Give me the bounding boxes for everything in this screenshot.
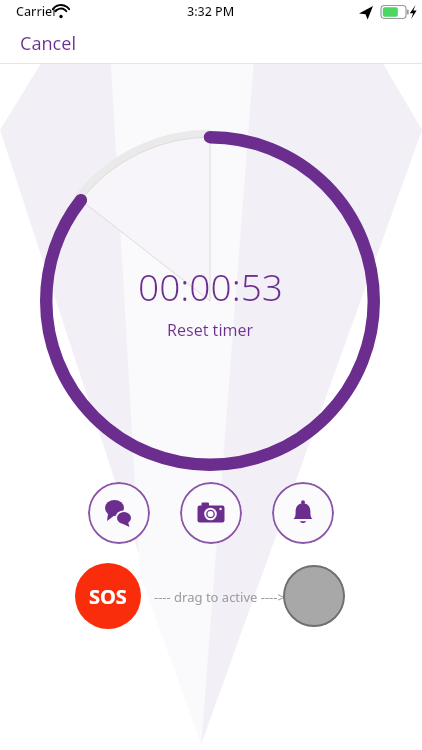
button[interactable]: Camera [180,482,242,544]
button[interactable]: Messages [88,482,150,544]
button[interactable]: SOS [75,563,141,629]
button[interactable]: Drag handle [283,565,345,627]
staticText: Carrier [16,3,58,20]
button[interactable]: Cancel [14,26,100,60]
staticText: 3:32 PM [187,3,235,20]
staticText: SOS [89,583,127,610]
staticText: 00:00:53 [138,261,283,311]
staticText: Cancel [20,31,77,56]
button[interactable]: 00:00:53 [40,131,380,471]
staticText: Reset timer [167,319,254,341]
button[interactable]: Alarm [272,482,334,544]
staticText: ---- drag to active ----> [154,588,285,606]
